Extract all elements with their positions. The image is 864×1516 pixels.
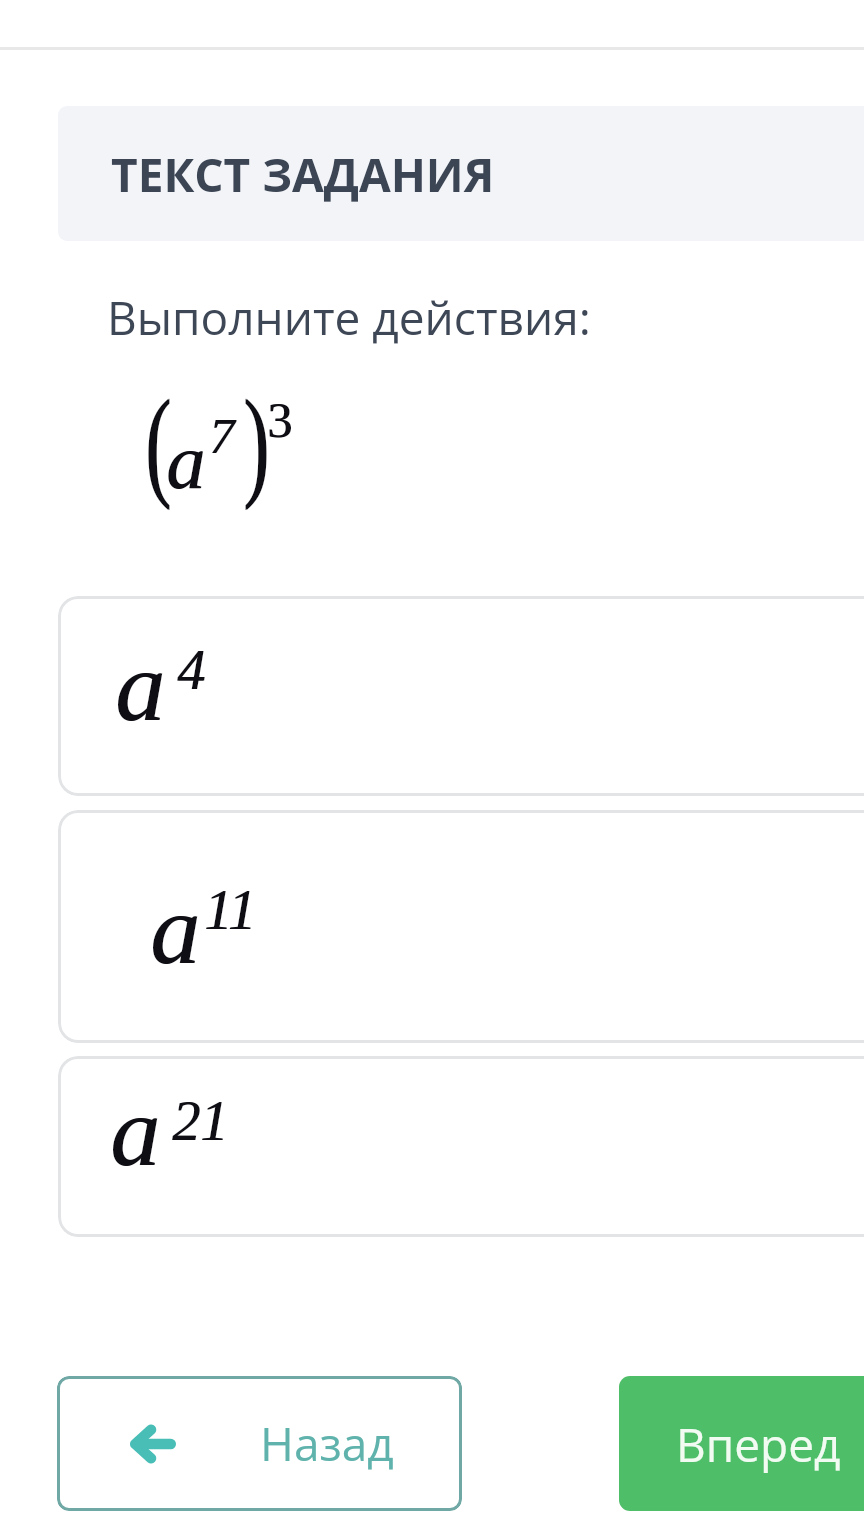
staticText: ) <box>244 373 270 509</box>
staticText: ( <box>145 373 171 509</box>
staticText: a <box>150 874 200 985</box>
staticText: 21 <box>172 1090 228 1152</box>
staticText: a <box>115 631 165 742</box>
staticText: ( <box>146 373 172 509</box>
staticText: 7 <box>210 408 235 463</box>
staticText: ) <box>243 373 269 509</box>
staticText: a <box>110 1076 160 1187</box>
button[interactable]: Вперед <box>619 1376 864 1511</box>
staticText: 11 <box>205 879 257 941</box>
staticText: 7 <box>209 408 234 463</box>
staticText: 4 <box>178 639 206 701</box>
button[interactable]: Назад <box>57 1376 462 1511</box>
staticText: Назад <box>260 1412 394 1475</box>
staticText: a <box>116 631 166 742</box>
staticText: 21 <box>173 1090 229 1152</box>
staticText: 11 <box>204 879 256 941</box>
staticText: 3 <box>268 392 293 447</box>
other: Назад <box>129 1424 176 1464</box>
button[interactable]: a <box>58 1056 864 1237</box>
staticText: a <box>166 418 205 504</box>
button[interactable]: a <box>58 596 864 796</box>
staticText: 3 <box>267 392 292 447</box>
staticText: Вперед <box>676 1413 841 1476</box>
staticText: a <box>167 418 206 504</box>
staticText: 4 <box>177 639 205 701</box>
button[interactable]: a <box>58 810 864 1043</box>
staticText: Выполните действия: <box>107 286 591 349</box>
staticText: ТЕКСТ ЗАДАНИЯ <box>111 143 495 206</box>
staticText: a <box>111 1076 161 1187</box>
staticText: a <box>151 874 201 985</box>
